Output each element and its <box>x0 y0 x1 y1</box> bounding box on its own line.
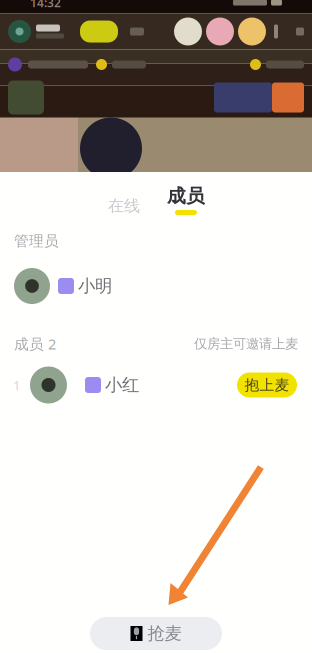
button[interactable]: 抢麦 <box>90 617 222 650</box>
staticText: 1 <box>13 376 21 394</box>
staticText: 小红 <box>105 374 139 396</box>
button[interactable]: 在线 <box>96 186 152 226</box>
button[interactable]: 小明 <box>0 264 312 308</box>
staticText: 成员 <box>167 184 205 207</box>
button[interactable]: 成员 <box>158 186 214 226</box>
staticText: 仅房主可邀请上麦 <box>194 336 298 352</box>
staticText: 在线 <box>108 196 140 216</box>
staticText: 成员 2 <box>14 334 56 353</box>
staticText: 管理员 <box>14 232 59 250</box>
button[interactable]: 1 <box>0 362 312 408</box>
staticText: 抢麦 <box>147 623 181 644</box>
staticText: 14:32 <box>30 0 61 10</box>
staticText: 小明 <box>78 275 112 297</box>
staticText: 抱上麦 <box>244 376 289 394</box>
